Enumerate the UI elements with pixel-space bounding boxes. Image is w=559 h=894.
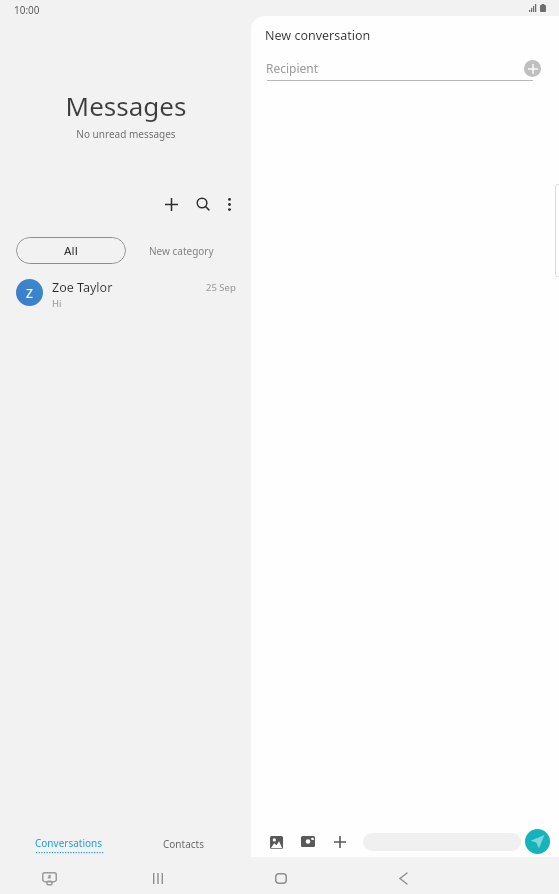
button[interactable]: Back (385, 860, 421, 894)
button[interactable]: Send (525, 829, 550, 854)
staticText: Z (26, 285, 33, 301)
button[interactable]: Z (0, 272, 252, 312)
staticText: New conversation (265, 27, 371, 44)
staticText: All (64, 243, 78, 259)
staticText: No unread messages (0, 127, 252, 141)
staticText: New category (149, 244, 214, 258)
button[interactable]: Contacts (143, 832, 223, 856)
staticText: Contacts (163, 837, 204, 851)
button[interactable]: Recent apps (140, 860, 176, 894)
button[interactable]: Gallery (262, 828, 290, 856)
button[interactable]: New conversation (153, 186, 189, 222)
button[interactable]: New category (138, 237, 224, 264)
button[interactable]: Search (185, 186, 221, 222)
button[interactable]: Conversations (20, 832, 117, 856)
button[interactable]: Multi window (31, 860, 67, 894)
staticText: 10:00 (14, 3, 40, 17)
staticText: Conversations (35, 836, 103, 850)
staticText: Zoe Taylor (52, 279, 113, 296)
button[interactable]: Camera (294, 827, 322, 855)
staticText: Recipient (266, 60, 319, 76)
button[interactable]: Add recipient (524, 60, 541, 77)
staticText: Messages (0, 88, 252, 123)
button[interactable]: All (16, 237, 126, 264)
staticText: 25 Sep (206, 281, 236, 294)
button[interactable]: More options (211, 186, 247, 222)
button[interactable]: Home (263, 860, 299, 894)
button[interactable]: More attachments (326, 828, 354, 856)
staticText: Hi (52, 297, 62, 310)
